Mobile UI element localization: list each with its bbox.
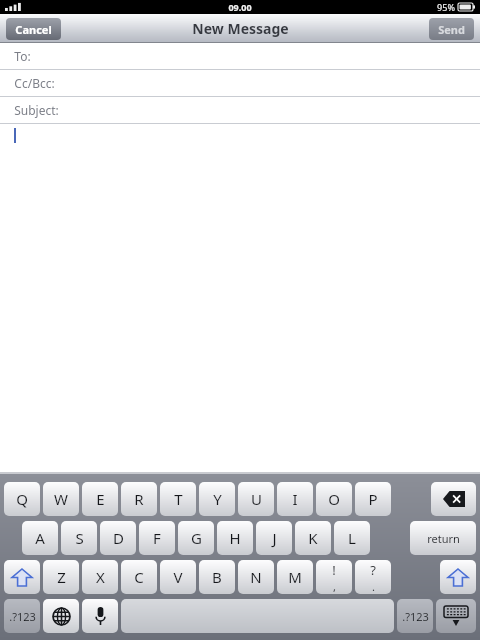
button[interactable]: N xyxy=(238,560,274,594)
staticText: N xyxy=(250,567,262,587)
staticText: New Message xyxy=(192,19,289,38)
button[interactable]: U xyxy=(238,482,274,516)
button[interactable]: return xyxy=(410,521,476,555)
staticText: H xyxy=(229,528,241,548)
button[interactable]: W xyxy=(43,482,79,516)
staticText: X xyxy=(96,567,105,587)
button[interactable]: Next keyboard xyxy=(43,599,79,633)
staticText: Send xyxy=(438,22,465,37)
button[interactable]: .?123 xyxy=(397,599,433,633)
button[interactable]: D xyxy=(100,521,136,555)
staticText: E xyxy=(96,489,105,509)
staticText: .?123 xyxy=(9,609,36,624)
button[interactable]: Dictation xyxy=(82,599,118,633)
button[interactable]: Space xyxy=(121,599,394,633)
staticText: U xyxy=(251,489,262,509)
staticText: Z xyxy=(57,567,66,587)
staticText: . xyxy=(372,579,375,594)
staticText: T xyxy=(174,489,183,509)
staticText: D xyxy=(113,528,124,548)
button[interactable]: L xyxy=(334,521,370,555)
staticText: Subject: xyxy=(14,102,59,118)
staticText: W xyxy=(54,489,68,509)
button[interactable]: Q xyxy=(4,482,40,516)
button[interactable]: Subject: xyxy=(0,97,480,123)
button[interactable]: M xyxy=(277,560,313,594)
button[interactable]: B xyxy=(199,560,235,594)
button[interactable]: Send xyxy=(429,18,474,40)
staticText: Y xyxy=(213,489,222,509)
staticText: Cc/Bcc: xyxy=(14,75,55,91)
button[interactable]: A xyxy=(22,521,58,555)
button[interactable]: ? xyxy=(355,560,391,594)
button[interactable]: G xyxy=(178,521,214,555)
staticText: Cancel xyxy=(15,22,52,37)
button[interactable]: P xyxy=(355,482,391,516)
button[interactable]: Cancel xyxy=(6,18,61,40)
staticText: ! xyxy=(332,561,336,579)
button[interactable]: J xyxy=(256,521,292,555)
button[interactable]: T xyxy=(160,482,196,516)
button[interactable]: H xyxy=(217,521,253,555)
button[interactable]: Cc/Bcc: xyxy=(0,70,480,96)
button[interactable]: V xyxy=(160,560,196,594)
staticText: L xyxy=(348,528,356,548)
button[interactable]: Z xyxy=(43,560,79,594)
staticText: , xyxy=(333,579,336,594)
button[interactable]: I xyxy=(277,482,313,516)
button[interactable]: O xyxy=(316,482,352,516)
staticText: M xyxy=(288,567,302,587)
staticText: Q xyxy=(16,489,28,509)
staticText: C xyxy=(134,567,144,587)
button[interactable]: C xyxy=(121,560,157,594)
button[interactable]: Backspace xyxy=(431,482,476,516)
staticText: J xyxy=(272,528,277,548)
button[interactable]: R xyxy=(121,482,157,516)
staticText: .?123 xyxy=(402,609,429,624)
button[interactable]: Shift xyxy=(4,560,40,594)
button[interactable]: To: xyxy=(0,43,480,69)
staticText: ? xyxy=(370,561,376,579)
staticText: R xyxy=(134,489,144,509)
staticText: 95% xyxy=(437,1,455,13)
staticText: To: xyxy=(14,48,31,64)
staticText: V xyxy=(173,567,183,587)
staticText: G xyxy=(191,528,202,548)
staticText: S xyxy=(75,528,84,548)
staticText: 09.00 xyxy=(228,1,252,13)
button[interactable]: Hide keyboard xyxy=(436,599,476,633)
staticText: K xyxy=(308,528,318,548)
button[interactable]: S xyxy=(61,521,97,555)
staticText: F xyxy=(153,528,161,548)
staticText: return xyxy=(427,531,460,546)
button[interactable]: X xyxy=(82,560,118,594)
staticText: P xyxy=(368,489,378,509)
staticText: A xyxy=(35,528,45,548)
staticText: O xyxy=(328,489,340,509)
button[interactable]: F xyxy=(139,521,175,555)
staticText: I xyxy=(292,489,298,509)
button[interactable]: K xyxy=(295,521,331,555)
button[interactable]: Shift xyxy=(440,560,476,594)
button[interactable]: .?123 xyxy=(4,599,40,633)
button[interactable]: E xyxy=(82,482,118,516)
button[interactable]: ! xyxy=(316,560,352,594)
staticText: B xyxy=(212,567,222,587)
button[interactable]: Y xyxy=(199,482,235,516)
